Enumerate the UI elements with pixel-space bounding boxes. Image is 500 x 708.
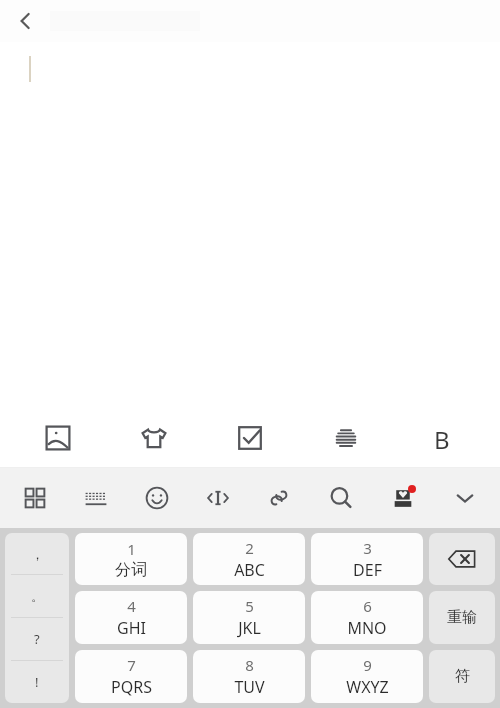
staticText: 。 bbox=[31, 588, 44, 604]
button[interactable]: 4 bbox=[75, 591, 187, 644]
button[interactable]: 7 bbox=[75, 650, 187, 703]
staticText: 2 bbox=[245, 538, 254, 558]
staticText: MNO bbox=[347, 617, 387, 639]
button[interactable]: Inbox bbox=[372, 468, 434, 528]
button[interactable]: 。 bbox=[5, 575, 69, 617]
staticText: ， bbox=[31, 546, 44, 562]
button[interactable]: Emoji bbox=[126, 468, 187, 528]
staticText: PQRS bbox=[111, 676, 152, 698]
button[interactable]: 1 bbox=[75, 533, 187, 585]
staticText: 9 bbox=[363, 655, 372, 675]
staticText: ? bbox=[34, 630, 40, 648]
button[interactable]: Backspace bbox=[429, 533, 495, 585]
button[interactable]: ， bbox=[5, 533, 69, 574]
staticText: 符 bbox=[455, 667, 470, 686]
button[interactable]: Align bbox=[298, 408, 394, 468]
button[interactable]: Apps bbox=[4, 468, 65, 528]
staticText: 5 bbox=[245, 596, 254, 616]
button[interactable]: ! bbox=[5, 661, 69, 703]
button[interactable]: Insert image bbox=[10, 408, 106, 468]
staticText: 3 bbox=[363, 538, 372, 558]
button[interactable]: 2 bbox=[193, 533, 305, 585]
button[interactable]: Search bbox=[310, 468, 372, 528]
button[interactable]: Hide keyboard bbox=[434, 468, 496, 528]
staticText: 4 bbox=[127, 596, 136, 616]
staticText: 6 bbox=[363, 596, 372, 616]
button[interactable]: Move cursor bbox=[187, 468, 248, 528]
button[interactable]: 9 bbox=[311, 650, 423, 703]
staticText: TUV bbox=[234, 676, 265, 698]
button[interactable]: Clipboard bbox=[248, 468, 310, 528]
staticText: 重输 bbox=[447, 608, 477, 627]
staticText: JKL bbox=[238, 617, 261, 639]
button[interactable]: Checklist bbox=[202, 408, 298, 468]
staticText: 1 bbox=[127, 539, 136, 559]
button[interactable]: Keyboard layout bbox=[65, 468, 126, 528]
button[interactable]: 3 bbox=[311, 533, 423, 585]
button[interactable]: 5 bbox=[193, 591, 305, 644]
button[interactable]: Bold bbox=[394, 408, 490, 468]
staticText: 8 bbox=[245, 655, 254, 675]
button[interactable]: Re-enter bbox=[429, 591, 495, 644]
staticText: 分词 bbox=[115, 560, 147, 580]
button[interactable]: Back bbox=[6, 1, 46, 41]
staticText: WXYZ bbox=[346, 676, 389, 698]
button[interactable]: 8 bbox=[193, 650, 305, 703]
staticText: DEF bbox=[353, 559, 382, 581]
staticText: ! bbox=[35, 673, 39, 691]
staticText: 7 bbox=[127, 655, 136, 675]
button[interactable]: ? bbox=[5, 618, 69, 660]
staticText: B bbox=[434, 423, 450, 453]
button[interactable]: 6 bbox=[311, 591, 423, 644]
staticText: ABC bbox=[234, 559, 265, 581]
staticText: GHI bbox=[117, 617, 146, 639]
button[interactable]: Style bbox=[106, 408, 202, 468]
button[interactable]: Symbols bbox=[429, 650, 495, 703]
